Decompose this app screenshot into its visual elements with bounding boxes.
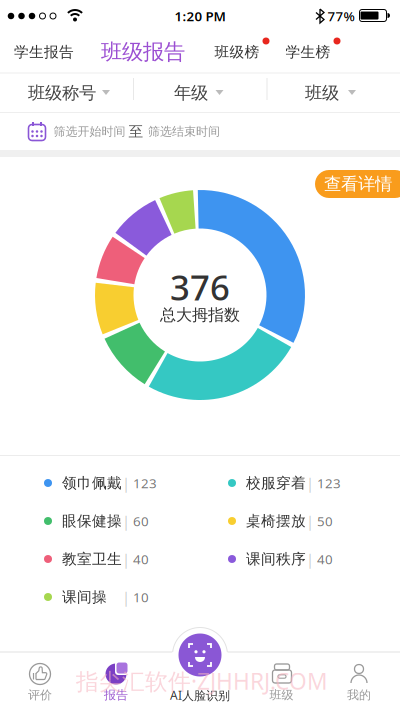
- staticText: 年级: [174, 82, 208, 104]
- staticText: 校服穿着: [246, 474, 306, 492]
- staticText: 123: [133, 474, 157, 492]
- staticText: 课间操: [62, 588, 107, 606]
- staticText: 77%: [327, 7, 354, 25]
- staticText: |: [306, 473, 314, 493]
- button[interactable]: 学生榜: [278, 32, 338, 72]
- staticText: 我的: [347, 688, 371, 702]
- staticText: 眼保健操: [62, 512, 122, 530]
- staticText: 40: [133, 550, 149, 568]
- staticText: |: [306, 511, 314, 531]
- staticText: 班级榜: [214, 43, 259, 61]
- staticText: 筛选开始时间: [53, 124, 125, 139]
- staticText: 至: [128, 122, 143, 140]
- button[interactable]: 我的: [319, 652, 399, 710]
- staticText: 总大拇指数: [160, 305, 240, 325]
- staticText: 学生报告: [14, 43, 74, 61]
- staticText: |: [306, 549, 314, 569]
- staticText: |: [122, 473, 130, 493]
- staticText: 指尖汇软件·ZJHHRJ.COM: [76, 666, 328, 696]
- staticText: 评价: [28, 688, 52, 702]
- button[interactable]: 筛选开始时间: [0, 113, 400, 150]
- button[interactable]: 报告: [78, 652, 158, 710]
- staticText: 班级: [269, 688, 293, 702]
- staticText: 报告: [104, 688, 128, 702]
- staticText: 查看详情: [324, 173, 392, 195]
- button[interactable]: 班级称号: [0, 74, 133, 112]
- staticText: 课间秩序: [246, 550, 306, 568]
- button[interactable]: 学生报告: [4, 32, 84, 72]
- staticText: |: [122, 511, 130, 531]
- staticText: 123: [317, 474, 341, 492]
- button[interactable]: 班级报告: [83, 32, 203, 72]
- button[interactable]: AI人脸识别: [160, 628, 240, 708]
- staticText: 40: [317, 550, 333, 568]
- staticText: 班级报告: [101, 39, 185, 65]
- staticText: 学生榜: [285, 43, 330, 61]
- button[interactable]: 班级榜: [207, 32, 267, 72]
- staticText: AI人脸识别: [170, 687, 230, 703]
- button[interactable]: 班级: [242, 652, 322, 710]
- staticText: 班级称号: [28, 82, 96, 104]
- staticText: 10: [133, 588, 149, 606]
- staticText: 桌椅摆放: [246, 512, 306, 530]
- staticText: 领巾佩戴: [62, 474, 122, 492]
- staticText: 教室卫生: [62, 550, 122, 568]
- button[interactable]: 年级: [133, 74, 267, 112]
- staticText: |: [122, 549, 130, 569]
- staticText: 筛选结束时间: [148, 124, 220, 139]
- staticText: 班级: [305, 82, 339, 104]
- button[interactable]: 班级: [267, 74, 400, 112]
- button[interactable]: 查看详情: [315, 170, 400, 198]
- staticText: |: [122, 587, 130, 607]
- staticText: 376: [170, 264, 230, 310]
- staticText: 50: [317, 512, 333, 530]
- staticText: 1:20 PM: [174, 7, 225, 25]
- staticText: 60: [133, 512, 149, 530]
- button[interactable]: 评价: [0, 652, 80, 710]
